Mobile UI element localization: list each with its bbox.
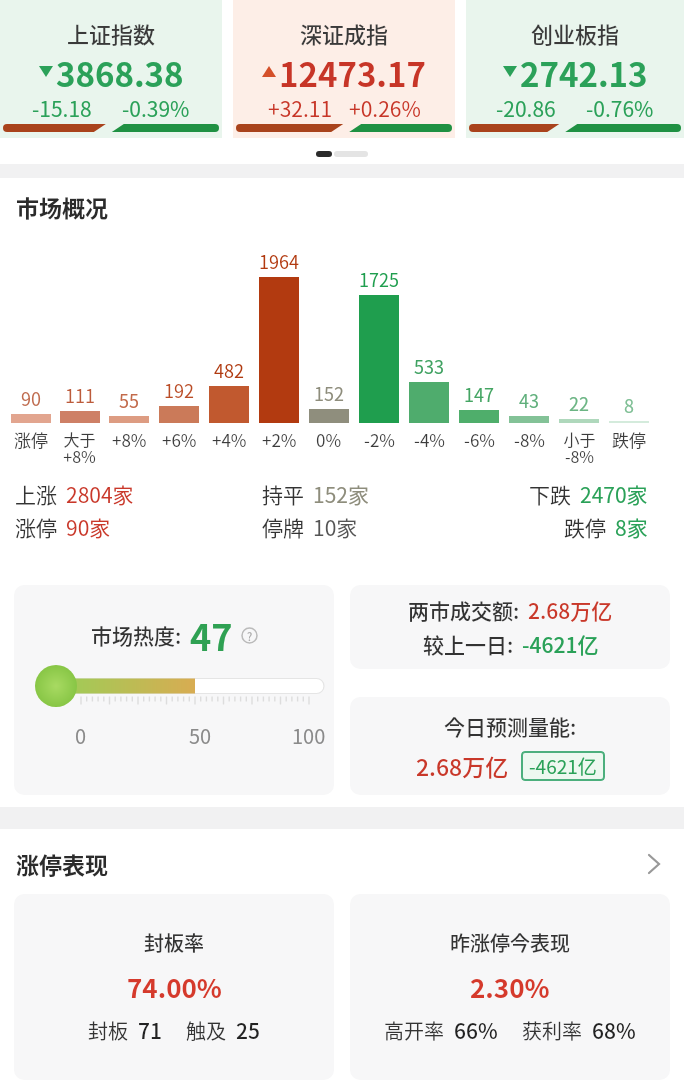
staticText: +0.26%	[349, 93, 421, 123]
staticText: 市场概况	[16, 190, 108, 223]
staticText: 10家	[313, 512, 358, 542]
staticText: 8	[624, 392, 634, 418]
staticText: 192	[164, 377, 194, 403]
staticText: 66%	[454, 1015, 498, 1045]
staticText: 上涨	[15, 479, 57, 509]
staticText: 0	[75, 721, 87, 750]
staticText: 111	[65, 382, 95, 408]
button[interactable]: 上证指数	[0, 0, 222, 138]
staticText: 涨停	[15, 512, 57, 542]
staticText: 8家	[615, 512, 648, 542]
staticText: 小于 -8%	[563, 427, 596, 468]
staticText: 下跌	[529, 479, 571, 509]
button[interactable]: 市场热度:	[14, 585, 334, 795]
staticText: 封板	[88, 1016, 128, 1045]
staticText: 1725	[359, 266, 399, 292]
staticText: 持平	[262, 479, 304, 509]
staticText: ?	[247, 628, 253, 644]
staticText: 触及	[186, 1016, 226, 1045]
button[interactable]: 深证成指	[233, 0, 455, 138]
button[interactable]: 昨涨停今表现	[350, 894, 670, 1080]
staticText: +2%	[262, 427, 297, 452]
staticText: +8%	[112, 427, 147, 452]
staticText: 482	[214, 357, 244, 383]
staticText: -8%	[514, 427, 545, 452]
staticText: 今日预测量能:	[444, 711, 577, 741]
staticText: 2.68万亿	[416, 749, 509, 782]
staticText: -4%	[414, 427, 445, 452]
staticText: 涨停表现	[16, 847, 108, 880]
staticText: -2%	[364, 427, 395, 452]
staticText: 3868.38	[56, 49, 184, 93]
staticText: -15.18	[32, 93, 92, 123]
staticText: 50	[189, 721, 212, 750]
button[interactable]: 封板率	[14, 894, 334, 1080]
staticText: 90家	[66, 512, 111, 542]
staticText: -4621亿	[529, 752, 597, 780]
staticText: 71	[138, 1015, 162, 1045]
button[interactable]: 今日预测量能:	[350, 697, 670, 795]
staticText: 2742.13	[520, 49, 648, 93]
staticText: 90	[21, 385, 41, 411]
staticText: 深证成指	[300, 17, 389, 49]
staticText: 市场热度:	[91, 620, 182, 650]
staticText: 22	[569, 390, 589, 416]
staticText: 43	[519, 387, 539, 413]
staticText: 上证指数	[67, 17, 156, 49]
staticText: 0%	[316, 427, 342, 452]
staticText: 74.00%	[127, 968, 222, 1006]
button[interactable]: 创业板指	[466, 0, 684, 138]
staticText: 跌停	[612, 427, 646, 452]
staticText: 2.30%	[470, 968, 550, 1006]
staticText: 创业板指	[531, 17, 620, 49]
staticText: 100	[292, 721, 326, 750]
staticText: 2470家	[580, 479, 648, 509]
staticText: 152家	[313, 479, 369, 509]
staticText: 147	[464, 381, 494, 407]
staticText: 68%	[592, 1015, 636, 1045]
staticText: +32.11	[268, 93, 333, 123]
staticText: 停牌	[262, 512, 304, 542]
staticText: 封板率	[144, 928, 204, 957]
staticText: -0.76%	[586, 93, 654, 123]
staticText: -20.86	[496, 93, 556, 123]
staticText: 涨停	[14, 427, 48, 452]
staticText: 152	[314, 380, 344, 406]
staticText: 533	[414, 353, 444, 379]
staticText: -0.39%	[122, 93, 190, 123]
staticText: -4621亿	[522, 629, 599, 659]
staticText: 25	[236, 1015, 260, 1045]
button[interactable]: 两市成交额:	[350, 585, 670, 669]
staticText: 2804家	[66, 479, 134, 509]
staticText: 较上一日:	[423, 629, 514, 659]
staticText: 47	[190, 609, 233, 661]
staticText: +4%	[212, 427, 247, 452]
staticText: 跌停	[564, 512, 606, 542]
staticText: 两市成交额:	[408, 595, 520, 625]
staticText: 55	[119, 387, 139, 413]
staticText: 昨涨停今表现	[450, 928, 570, 957]
staticText: 高开率	[384, 1016, 444, 1045]
staticText: -6%	[464, 427, 495, 452]
staticText: 大于 +8%	[63, 427, 96, 468]
button[interactable]: 涨停表现	[16, 847, 660, 880]
staticText: 获利率	[522, 1016, 582, 1045]
staticText: 12473.17	[279, 49, 427, 93]
staticText: 2.68万亿	[528, 595, 613, 625]
staticText: 1964	[259, 248, 299, 274]
staticText: +6%	[162, 427, 197, 452]
